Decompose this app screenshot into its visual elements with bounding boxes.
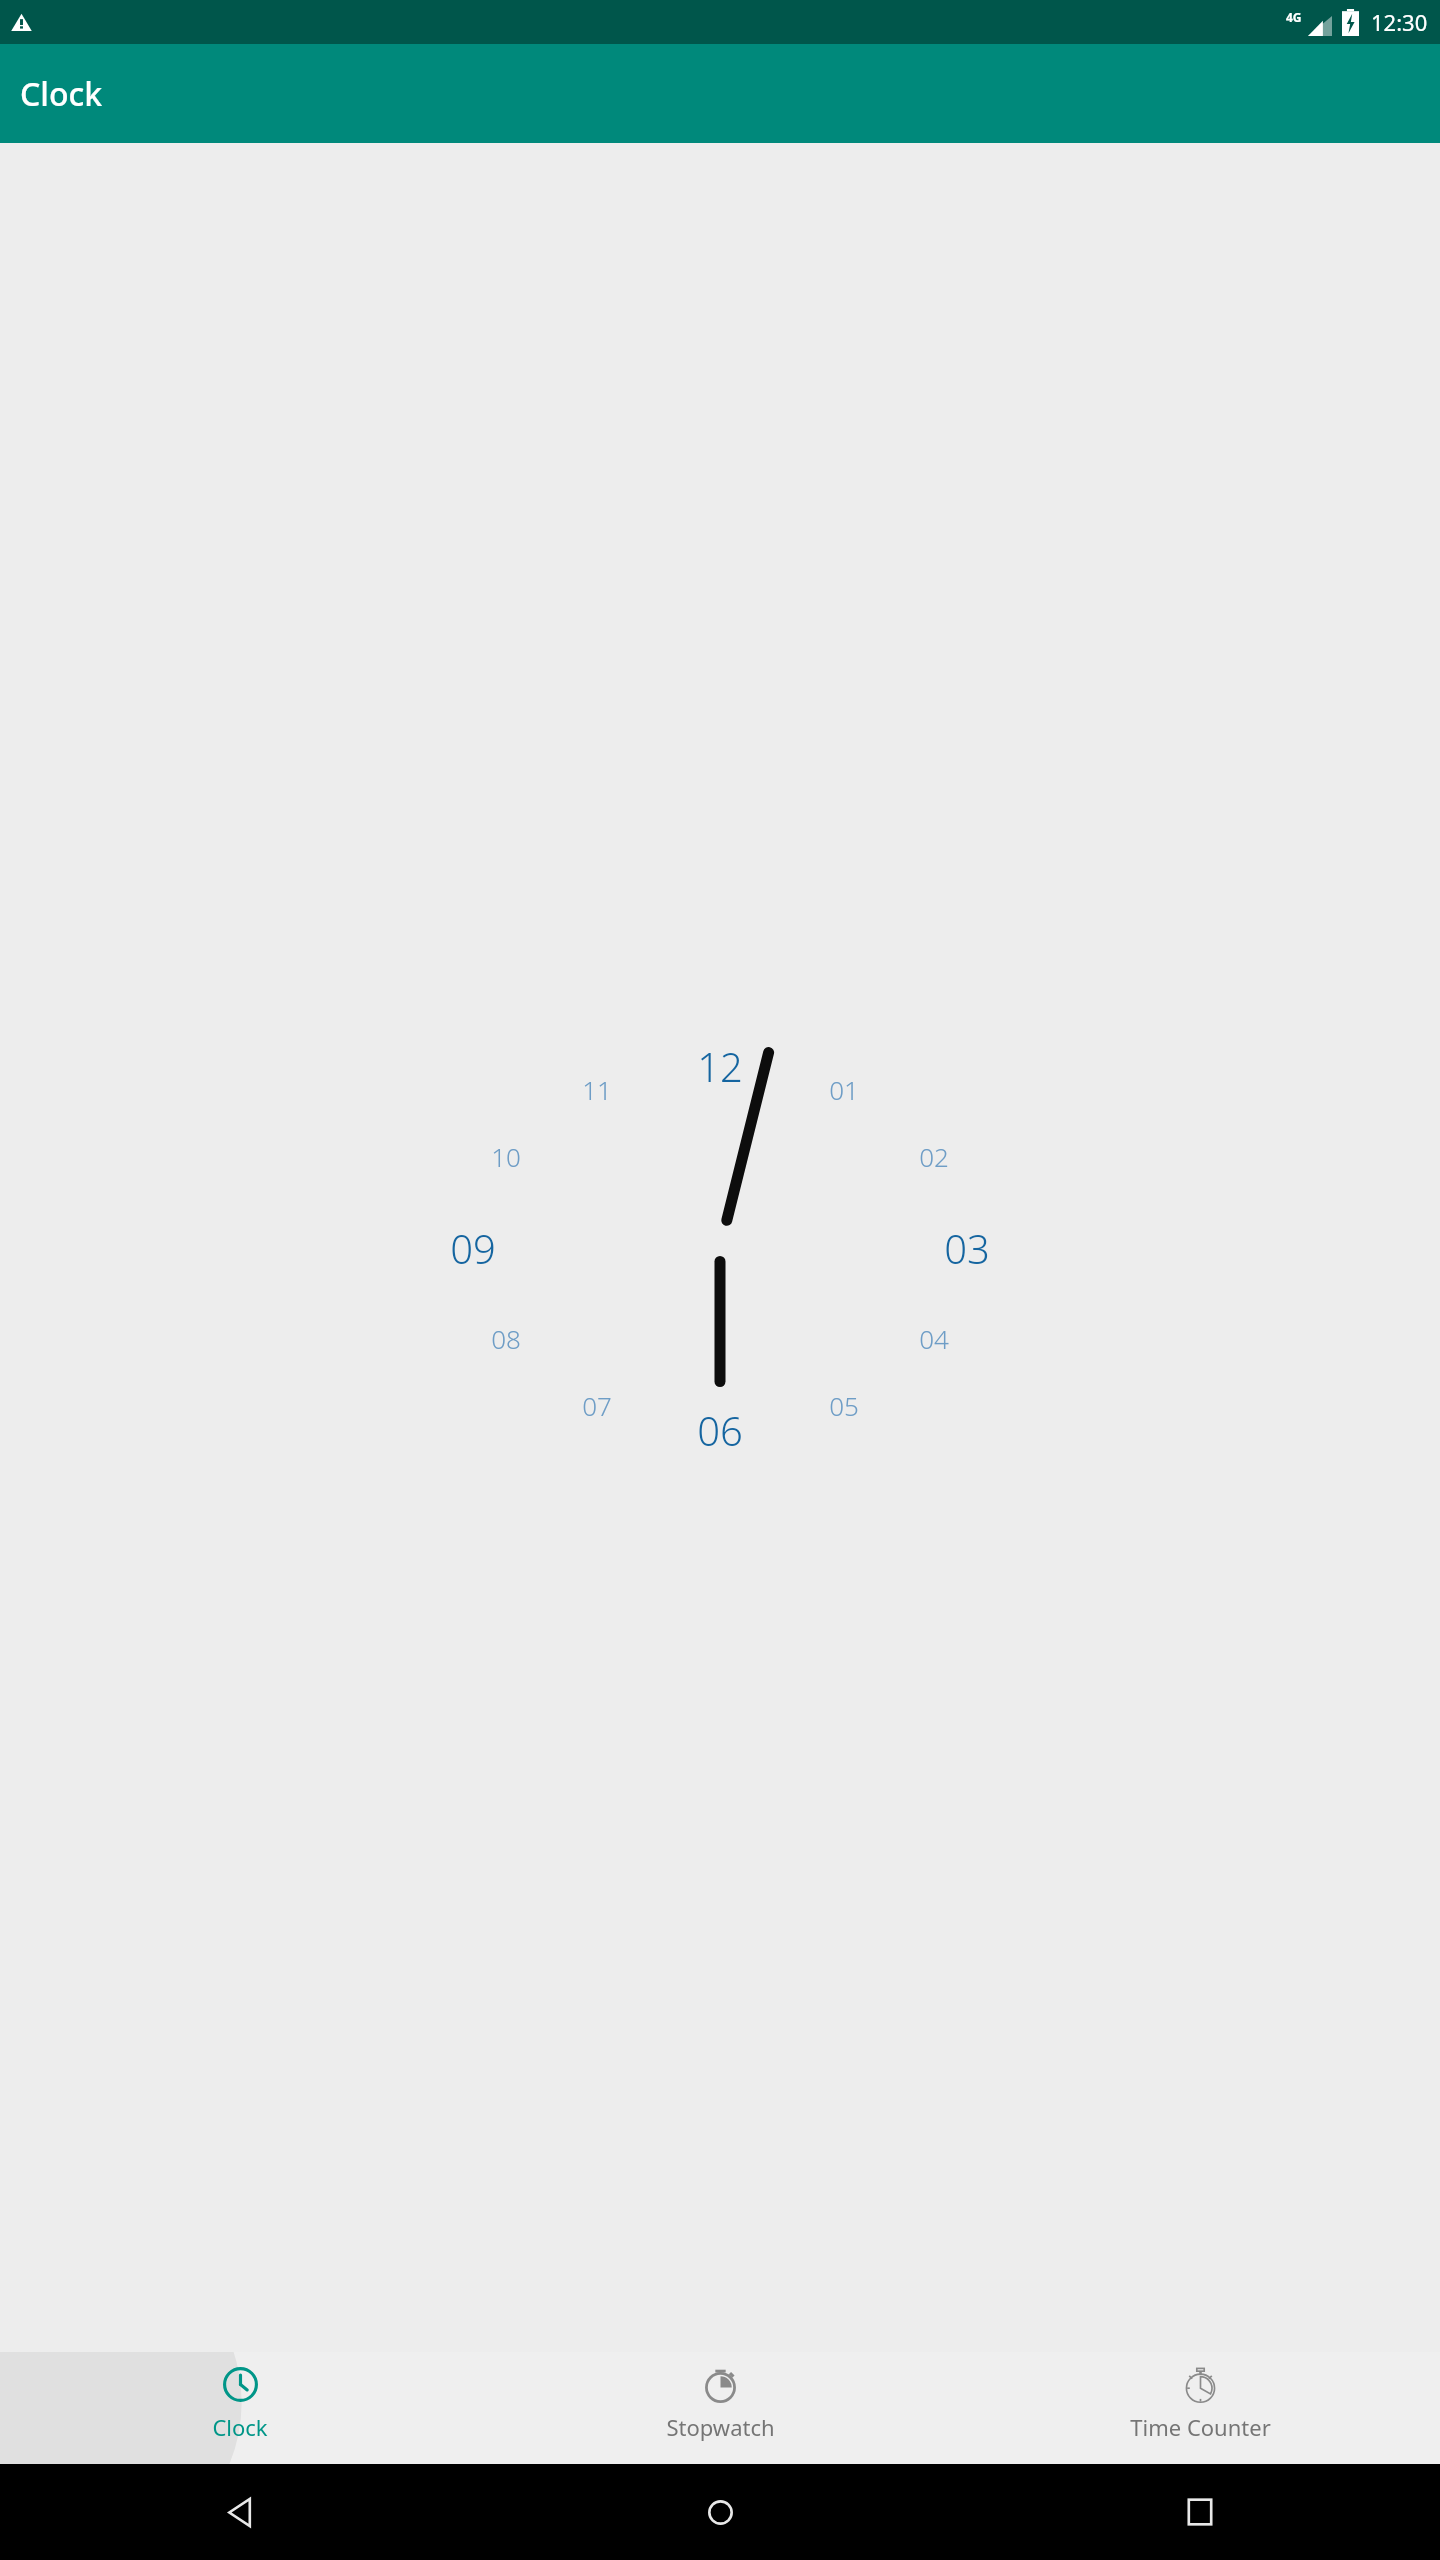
staticText: 12:30 — [1371, 7, 1428, 37]
staticText: 05 — [829, 1388, 859, 1423]
staticText: 02 — [919, 1139, 949, 1174]
staticText: Stopwatch — [666, 2412, 775, 2442]
staticText: 4G — [1286, 9, 1302, 25]
staticText: 12 — [697, 1039, 743, 1093]
button[interactable]: Back — [225, 2497, 256, 2528]
button[interactable]: Time Counter — [960, 2352, 1440, 2464]
staticText: 09 — [450, 1221, 496, 1275]
staticText: Clock — [20, 72, 103, 116]
staticText: Time Counter — [1130, 2412, 1271, 2442]
staticText: 10 — [491, 1139, 521, 1174]
button[interactable]: Recents — [1186, 2498, 1214, 2526]
button[interactable]: Clock — [0, 2352, 480, 2464]
staticText: 11 — [582, 1072, 612, 1107]
staticText: 04 — [919, 1321, 949, 1356]
button[interactable]: Stopwatch — [480, 2352, 960, 2464]
staticText: Clock — [212, 2412, 268, 2442]
staticText: 01 — [829, 1072, 859, 1107]
button[interactable]: Home — [705, 2497, 736, 2528]
staticText: 07 — [582, 1388, 612, 1423]
staticText: 03 — [944, 1221, 990, 1275]
staticText: 06 — [697, 1403, 743, 1457]
staticText: 08 — [491, 1321, 521, 1356]
